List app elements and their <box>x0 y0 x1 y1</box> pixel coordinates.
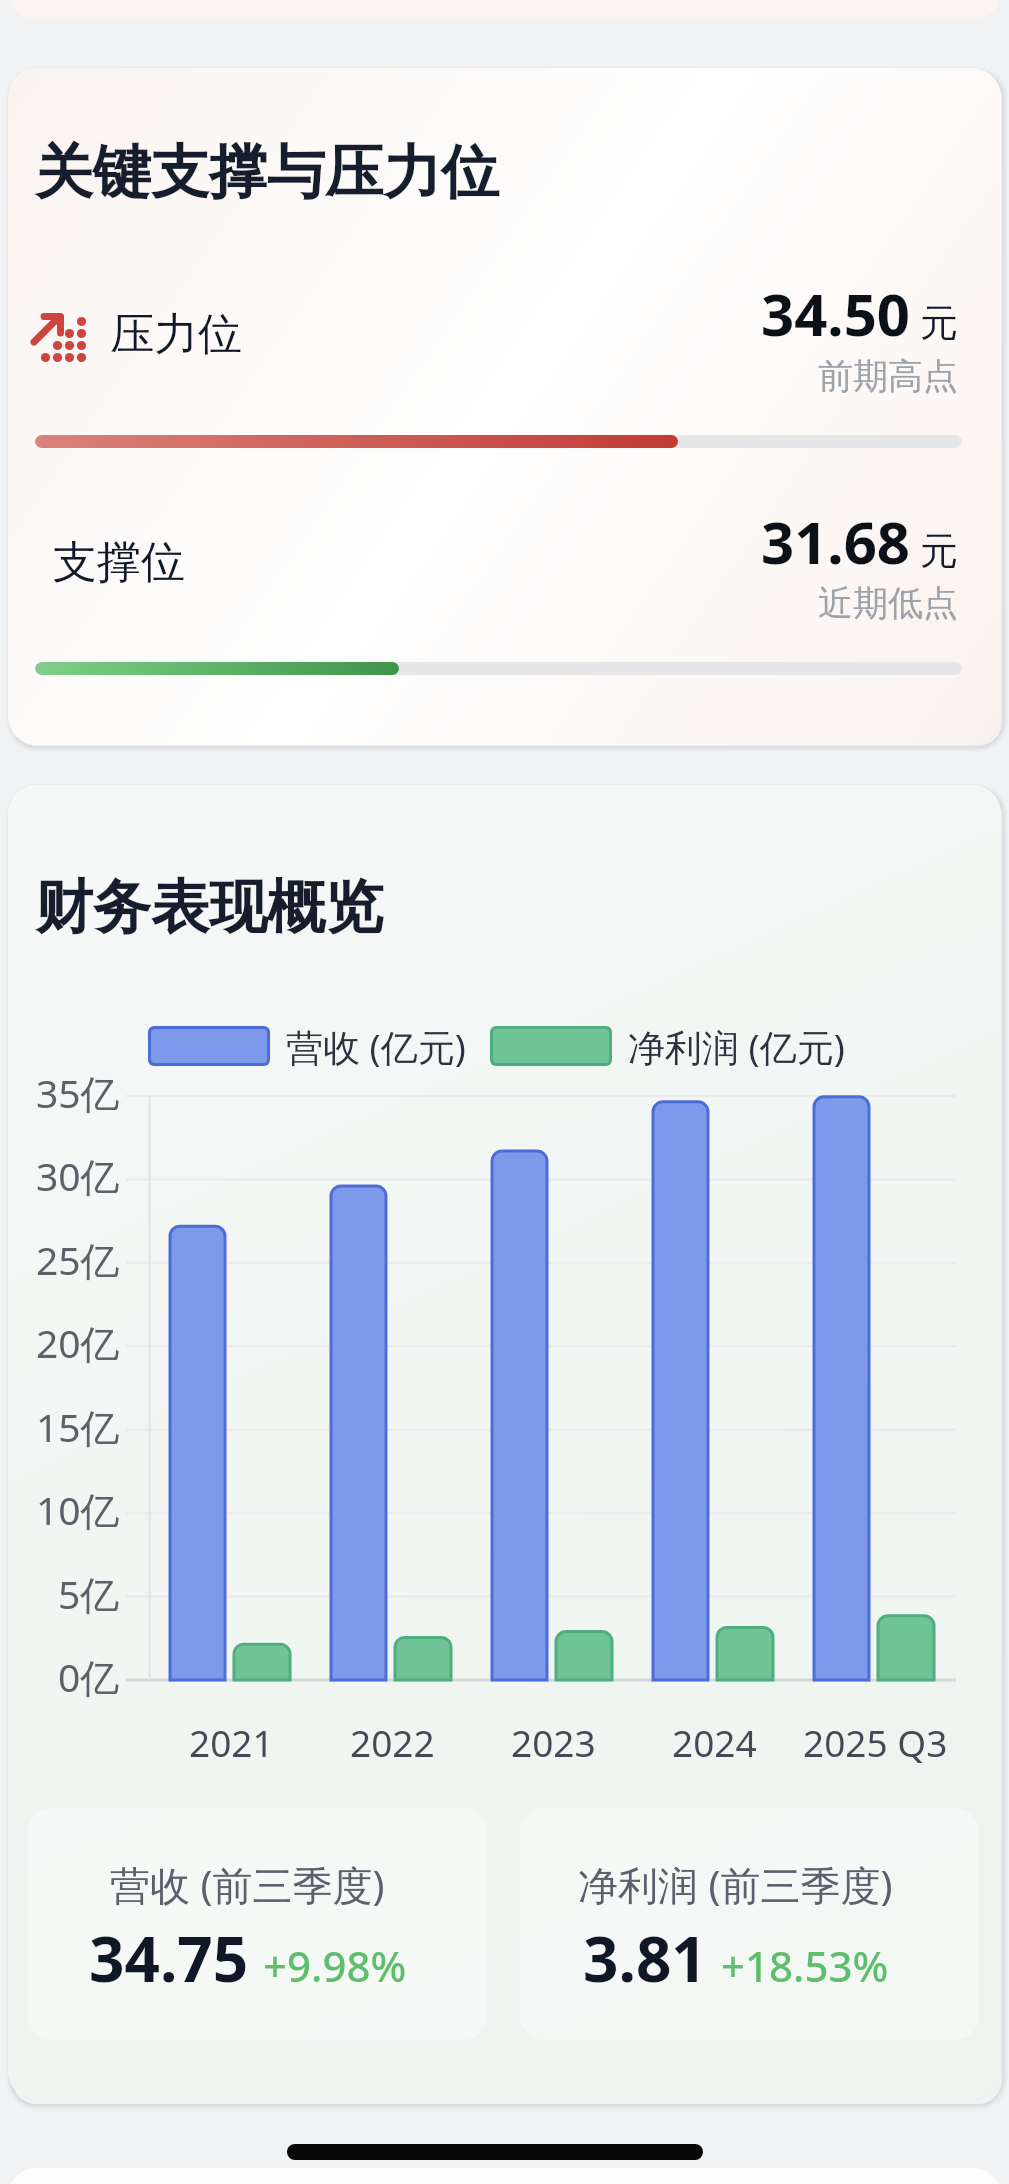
staticText: 财务表现概览 <box>35 871 383 944</box>
staticText: 35亿 <box>36 1066 120 1119</box>
staticText: 30亿 <box>36 1149 120 1202</box>
staticText: +18.53% <box>721 1937 889 1994</box>
staticText: 34.75 <box>89 1916 249 2000</box>
staticText: 2022 <box>350 1717 435 1767</box>
staticText: 前期高点 <box>818 354 958 398</box>
staticText: 20亿 <box>36 1316 120 1369</box>
staticText: 2024 <box>672 1717 757 1767</box>
staticText: 10亿 <box>36 1483 120 1536</box>
staticText: 2025 Q3 <box>803 1717 948 1767</box>
staticText: 营收 (前三季度) <box>110 1857 385 1912</box>
staticText: 0亿 <box>58 1650 120 1703</box>
button[interactable]: 净利润 (前三季度) <box>520 1808 979 2040</box>
staticText: 34.50 元 <box>761 274 958 353</box>
staticText: 营收 (亿元) <box>286 1021 466 1072</box>
staticText: 近期低点 <box>818 581 958 625</box>
staticText: 压力位 <box>110 307 242 362</box>
button[interactable]: 营收 (前三季度) <box>28 1808 487 2040</box>
staticText: +9.98% <box>263 1937 407 1994</box>
staticText: 5亿 <box>58 1567 120 1620</box>
staticText: 净利润 (亿元) <box>628 1021 845 1072</box>
staticText: 25亿 <box>36 1233 120 1286</box>
staticText: 净利润 (前三季度) <box>578 1857 893 1912</box>
staticText: 15亿 <box>36 1400 120 1453</box>
staticText: 3.81 <box>583 1916 707 2000</box>
staticText: 2021 <box>189 1717 274 1767</box>
staticText: 关键支撑与压力位 <box>35 136 499 209</box>
staticText: 2023 <box>511 1717 596 1767</box>
staticText: 31.68 元 <box>761 502 958 581</box>
staticText: 支撑位 <box>53 535 185 590</box>
